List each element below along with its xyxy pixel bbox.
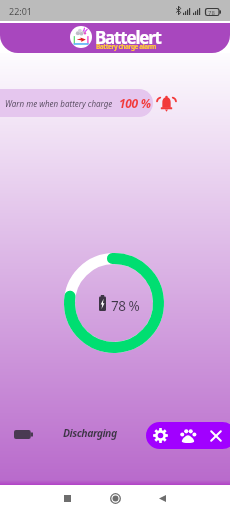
button[interactable]: Close <box>202 422 230 449</box>
button[interactable]: Back <box>152 488 172 508</box>
button[interactable]: Pets <box>174 422 202 449</box>
button[interactable]: Alarm <box>155 92 177 114</box>
staticText: Battelert <box>95 26 161 49</box>
staticText: 78 <box>208 9 215 17</box>
button[interactable]: Warn me when battery charge <box>0 89 153 117</box>
staticText: Warn me when battery charge <box>5 98 113 109</box>
button[interactable]: Settings <box>146 422 174 449</box>
staticText: 22:01 <box>9 5 33 17</box>
staticText: 100 % <box>119 95 151 111</box>
button[interactable]: Home <box>105 488 125 508</box>
staticText: Battery charge alarm <box>96 42 157 51</box>
staticText: 78 % <box>111 297 140 315</box>
staticText: Discharging <box>63 426 117 440</box>
button[interactable]: Recents <box>57 488 77 508</box>
